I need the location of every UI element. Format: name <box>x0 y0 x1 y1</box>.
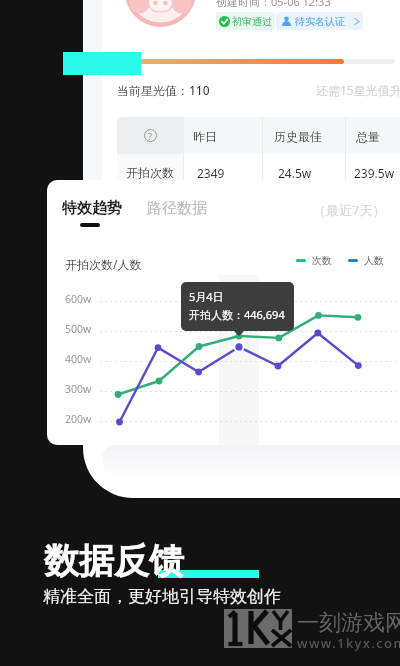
staticText: 300w <box>65 382 92 396</box>
staticText: 开拍人数：446,694 <box>189 307 285 322</box>
staticText: 创建时间：05-06 12:33 <box>216 0 331 9</box>
staticText: 一刻游戏网 <box>297 609 400 637</box>
staticText: 人数 <box>364 254 384 267</box>
staticText: 路径数据 <box>147 199 207 218</box>
staticText: 历史最佳 <box>274 129 322 144</box>
staticText: 特效趋势 <box>62 199 122 218</box>
staticText: 当前星光值：110 <box>117 82 210 98</box>
staticText: 24.5w <box>278 165 312 181</box>
staticText: 总量 <box>356 129 380 144</box>
staticText: ? <box>148 130 152 142</box>
staticText: 600w <box>65 292 92 306</box>
staticText: 2349 <box>197 165 225 181</box>
staticText: 开拍次数/人数 <box>65 256 142 272</box>
staticText: 5月4日 <box>189 289 224 304</box>
staticText: 次数 <box>312 254 332 267</box>
staticText: 还需15星光值升级 <box>316 82 400 98</box>
staticText: 239.5w <box>354 165 395 181</box>
staticText: 开拍次数 <box>126 165 174 180</box>
staticText: www.1kyx.com <box>297 634 400 652</box>
staticText: 200w <box>65 412 92 426</box>
staticText: 500w <box>65 322 92 336</box>
staticText: 400w <box>65 352 92 366</box>
button[interactable]: 特效趋势 <box>47 180 107 199</box>
staticText: 昨日 <box>193 129 217 144</box>
button[interactable]: 路径数据 <box>47 180 107 199</box>
staticText: 数据反馈 <box>44 539 184 583</box>
button[interactable]: 初审通过 <box>216 12 275 30</box>
staticText: 待实名认证 <box>295 15 345 28</box>
staticText: 精准全面，更好地引导特效创作 <box>43 586 281 607</box>
button[interactable]: 待实名认证 <box>276 12 363 30</box>
button[interactable]: Help <box>144 129 157 142</box>
staticText: 初审通过 <box>232 15 272 28</box>
staticText: （最近7天） <box>313 201 386 219</box>
